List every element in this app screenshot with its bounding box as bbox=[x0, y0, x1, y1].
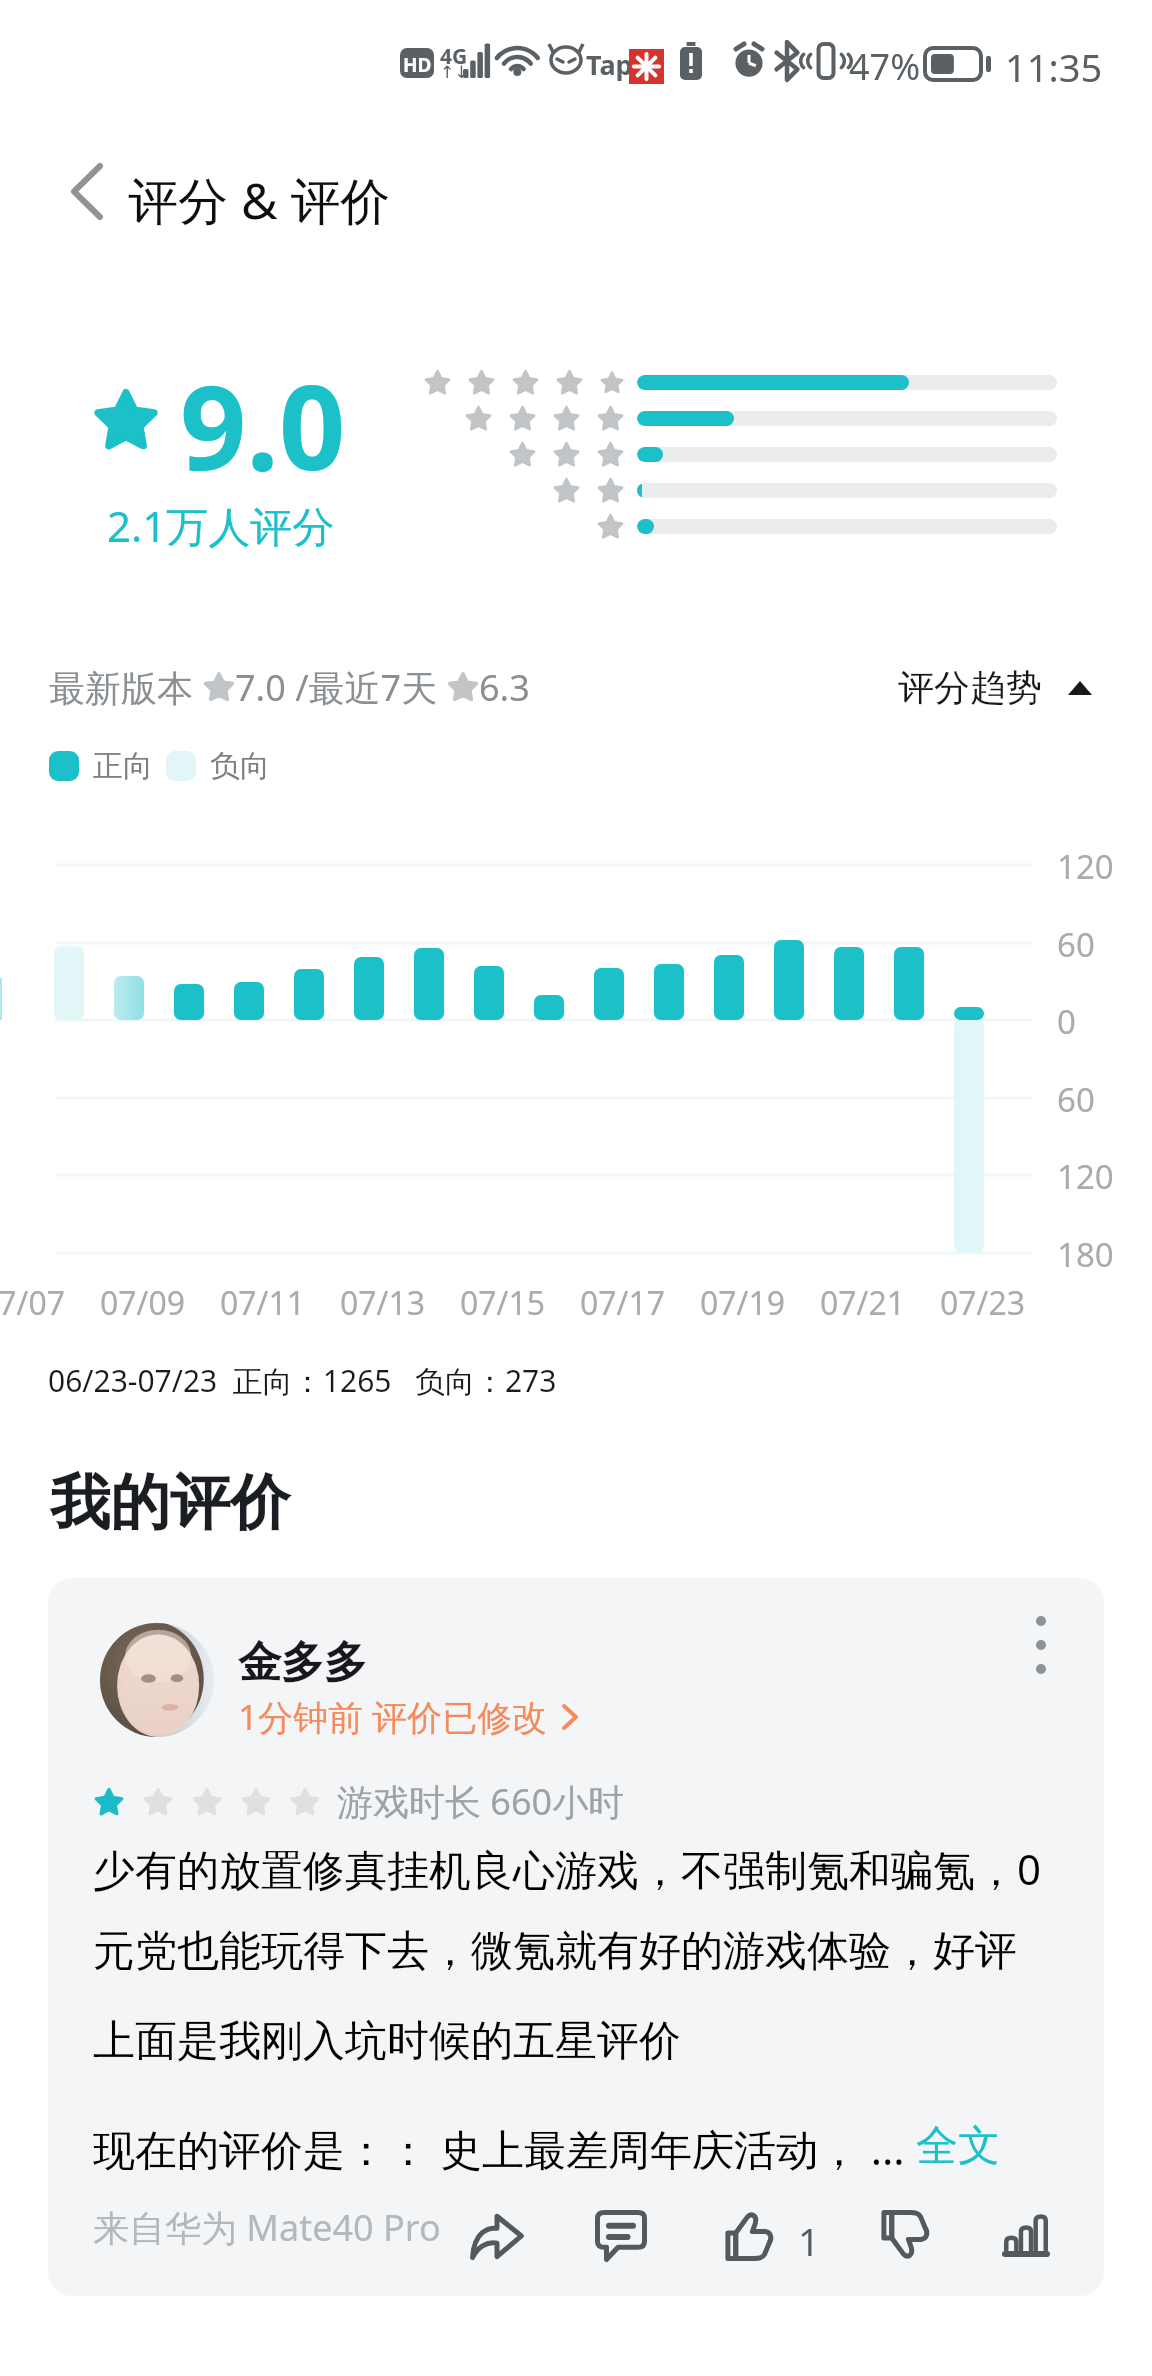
staticText: 07/17 bbox=[580, 1281, 666, 1325]
staticText: 负向 bbox=[210, 747, 270, 785]
staticText: 1 bbox=[798, 2215, 820, 2267]
staticText: 60 bbox=[1057, 922, 1095, 967]
staticText: 元党也能玩得下去，微氪就有好的游戏体验，好评 bbox=[93, 1925, 1017, 1978]
staticText: 上面是我刚入坑时候的五星评价 bbox=[93, 2015, 681, 2068]
staticText: 正向 bbox=[93, 747, 153, 785]
staticText: 1分钟前 评价已修改 bbox=[238, 1693, 548, 1741]
staticText: 47% bbox=[849, 42, 921, 91]
button[interactable]: Like bbox=[712, 2200, 782, 2270]
staticText: 我的评价 bbox=[50, 1465, 290, 1541]
staticText: 07/21 bbox=[820, 1281, 906, 1325]
staticText: 07/11 bbox=[220, 1281, 306, 1325]
staticText: 6.3 bbox=[479, 663, 530, 712]
staticText: 4G bbox=[440, 42, 468, 71]
staticText: 07/07 bbox=[0, 1281, 66, 1325]
staticText: 评分趋势 bbox=[898, 665, 1042, 710]
button[interactable]: More options bbox=[1006, 1610, 1076, 1680]
staticText: 金多多 bbox=[238, 1636, 367, 1690]
staticText: 游戏时长 660小时 bbox=[337, 1777, 625, 1826]
button[interactable]: Back bbox=[42, 146, 132, 236]
staticText: 180 bbox=[1057, 1232, 1114, 1277]
staticText: HD bbox=[403, 52, 432, 78]
staticText: 现在的评价是：： 史上最差周年庆活动， ... bbox=[93, 2120, 916, 2177]
button[interactable]: Share bbox=[462, 2200, 532, 2270]
button[interactable]: 评分趋势 bbox=[898, 665, 1092, 710]
button[interactable]: Statistics bbox=[991, 2200, 1061, 2270]
staticText: 全文 bbox=[916, 2120, 1000, 2173]
staticText: ↑↓ bbox=[440, 62, 469, 82]
staticText: 0 bbox=[1057, 999, 1076, 1044]
staticText: 07/13 bbox=[340, 1281, 426, 1325]
button[interactable]: Dislike bbox=[868, 2200, 938, 2270]
staticText: 评分 & 评价 bbox=[128, 166, 391, 234]
staticText: 07/09 bbox=[100, 1281, 186, 1325]
staticText: 2.1万人评分 bbox=[107, 497, 335, 554]
staticText: Tap bbox=[586, 46, 633, 83]
staticText: 07/23 bbox=[940, 1281, 1026, 1325]
staticText: 最新版本 bbox=[49, 663, 203, 712]
staticText: 07/15 bbox=[460, 1281, 546, 1325]
staticText: 120 bbox=[1057, 844, 1114, 889]
staticText: 少有的放置修真挂机良心游戏，不强制氪和骗氪，0 bbox=[93, 1840, 1042, 1897]
staticText: 06/23-07/23 正向：1265 负向：273 bbox=[48, 1360, 557, 1401]
staticText: 11:35 bbox=[1005, 41, 1103, 93]
staticText: 9.0 bbox=[180, 346, 346, 504]
button[interactable]: Comment bbox=[586, 2200, 656, 2270]
staticText: 来自华为 Mate40 Pro bbox=[93, 2203, 441, 2252]
staticText: 7.0 /最近7天 bbox=[235, 663, 447, 712]
staticText: 120 bbox=[1057, 1154, 1114, 1199]
button[interactable]: 金多多 bbox=[48, 1578, 1104, 2296]
staticText: 07/19 bbox=[700, 1281, 786, 1325]
staticText: 60 bbox=[1057, 1077, 1095, 1122]
